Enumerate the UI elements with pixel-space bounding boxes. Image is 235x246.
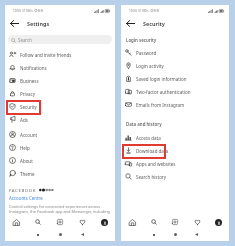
staticText: Account	[20, 132, 38, 138]
button[interactable]: Emails from Instagram	[121, 98, 229, 111]
button[interactable]: Accounts Centre	[9, 195, 43, 201]
button[interactable]: About	[5, 154, 115, 167]
button[interactable]: Login activity	[121, 59, 229, 72]
button[interactable]: Recents	[34, 231, 41, 238]
button[interactable]: Theme	[5, 167, 115, 180]
button[interactable]: Home	[11, 217, 21, 227]
button[interactable]: Follow and invite friends	[5, 48, 115, 61]
button[interactable]: Account	[5, 128, 115, 141]
button[interactable]: Activity	[192, 217, 202, 227]
button[interactable]: Back	[9, 18, 20, 29]
button[interactable]: Security	[5, 100, 115, 113]
staticText: About	[20, 158, 33, 164]
staticText: Apps and websites	[136, 161, 176, 167]
staticText: Download data	[136, 148, 169, 154]
button[interactable]: Business	[5, 74, 115, 87]
button[interactable]: Activity	[77, 217, 87, 227]
button[interactable]: Home button	[57, 231, 64, 238]
staticText: Login security	[126, 37, 157, 43]
button[interactable]: Two-factor authentication	[121, 85, 229, 98]
button[interactable]: Back	[193, 231, 200, 238]
button[interactable]: Search	[149, 217, 159, 227]
staticText: Business	[20, 78, 39, 84]
staticText: FACEBOOK	[9, 187, 37, 193]
staticText: Control settings for connected experienc…	[9, 204, 110, 214]
staticText: Saved login information	[136, 76, 187, 82]
staticText: Search	[18, 37, 32, 43]
button[interactable]: Help	[5, 141, 115, 154]
staticText: Two-factor authentication	[136, 89, 191, 95]
button[interactable]: Back	[79, 231, 86, 238]
button[interactable]: Recents	[150, 231, 157, 238]
staticText: Ads	[20, 117, 28, 123]
button[interactable]: Home	[127, 217, 137, 227]
button[interactable]: Apps and websites	[121, 157, 229, 170]
staticText: 10:56	[129, 9, 137, 13]
staticText: Password	[136, 50, 157, 56]
button[interactable]: Create	[170, 217, 180, 227]
button[interactable]: Privacy	[5, 87, 115, 100]
staticText: Emails from Instagram	[136, 102, 185, 108]
staticText: 31 KB/s	[22, 9, 33, 13]
button[interactable]: Profile	[213, 217, 223, 227]
button[interactable]: Search	[33, 217, 43, 227]
button[interactable]: Access data	[121, 131, 229, 144]
staticText: Theme	[20, 171, 35, 177]
staticText: Search history	[136, 174, 167, 180]
staticText: Security	[20, 104, 37, 110]
button[interactable]: Search	[8, 35, 112, 44]
staticText: Follow and invite friends	[20, 52, 72, 58]
staticText: Help	[20, 145, 30, 151]
button[interactable]: Download data	[121, 144, 229, 157]
button[interactable]: Password	[121, 46, 229, 59]
staticText: Privacy	[20, 91, 36, 97]
staticText: Notifications	[20, 65, 47, 71]
staticText: Access data	[136, 135, 161, 141]
button[interactable]: Back	[125, 18, 136, 29]
button[interactable]: Ads	[5, 113, 115, 126]
staticText: 10:56	[13, 9, 21, 13]
staticText: 31 KB/s	[138, 9, 149, 13]
button[interactable]: Home button	[172, 231, 179, 238]
button[interactable]: Saved login information	[121, 72, 229, 85]
staticText: Settings	[27, 20, 50, 27]
button[interactable]: Profile	[99, 217, 109, 227]
button[interactable]: Notifications	[5, 61, 115, 74]
button[interactable]: Create	[55, 217, 65, 227]
staticText: Security	[143, 20, 165, 27]
staticText: Login activity	[136, 63, 164, 69]
staticText: Data and history	[126, 121, 162, 127]
button[interactable]: Search history	[121, 170, 229, 183]
